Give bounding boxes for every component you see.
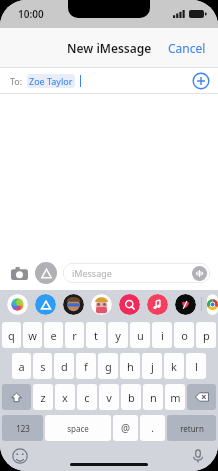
staticText: @: [121, 421, 130, 435]
staticText: c: [84, 390, 90, 405]
button[interactable]: f: [76, 353, 96, 379]
button[interactable]: App Store: [35, 262, 57, 284]
staticText: To:: [10, 75, 23, 87]
button[interactable]: iMessage: [63, 263, 210, 283]
staticText: Cancel: [168, 40, 206, 56]
button[interactable]: App: [63, 294, 84, 315]
button[interactable]: 123: [2, 415, 43, 441]
button[interactable]: To:: [0, 68, 218, 94]
button[interactable]: y: [108, 322, 128, 348]
staticText: .: [151, 421, 154, 435]
staticText: m: [170, 390, 181, 405]
button[interactable]: h: [120, 353, 140, 379]
button[interactable]: w: [23, 322, 42, 348]
button[interactable]: .: [140, 415, 165, 441]
button[interactable]: Audio message: [192, 266, 207, 281]
button[interactable]: Cancel: [156, 32, 218, 64]
button[interactable]: Backspace: [187, 384, 216, 410]
staticText: v: [106, 390, 112, 405]
button[interactable]: z: [33, 384, 53, 410]
staticText: 123: [16, 423, 30, 434]
staticText: o: [181, 328, 188, 343]
button[interactable]: j: [142, 353, 162, 379]
button[interactable]: i: [152, 322, 172, 348]
staticText: x: [62, 390, 68, 405]
button[interactable]: b: [121, 384, 141, 410]
staticText: p: [203, 328, 210, 343]
button[interactable]: q: [2, 322, 21, 348]
button[interactable]: return: [167, 415, 216, 441]
button[interactable]: k: [164, 353, 184, 379]
button[interactable]: n: [143, 384, 163, 410]
button[interactable]: p: [196, 322, 216, 348]
staticText: k: [171, 359, 177, 374]
button[interactable]: o: [174, 322, 194, 348]
staticText: j: [151, 359, 154, 374]
staticText: d: [61, 359, 68, 374]
button[interactable]: a: [12, 353, 31, 379]
button[interactable]: g: [98, 353, 118, 379]
button[interactable]: App: [207, 294, 218, 315]
button[interactable]: l: [186, 353, 206, 379]
button[interactable]: App: [91, 294, 112, 315]
button[interactable]: App: [7, 294, 28, 315]
staticText: w: [28, 328, 37, 343]
button[interactable]: Emoji: [12, 448, 28, 464]
button[interactable]: t: [86, 322, 106, 348]
button[interactable]: Dictation: [190, 448, 206, 464]
staticText: u: [137, 328, 144, 343]
button[interactable]: x: [55, 384, 75, 410]
button[interactable]: e: [44, 322, 63, 348]
staticText: b: [128, 390, 135, 405]
staticText: return: [180, 423, 204, 434]
staticText: i: [161, 328, 164, 343]
button[interactable]: s: [33, 353, 52, 379]
staticText: New iMessage: [67, 40, 152, 56]
button[interactable]: App: [175, 294, 196, 315]
staticText: t: [94, 328, 98, 343]
button[interactable]: Add contact: [192, 72, 210, 90]
staticText: s: [40, 359, 46, 374]
button[interactable]: Camera: [8, 262, 30, 284]
staticText: Zoe Taylor: [29, 75, 73, 87]
button[interactable]: m: [165, 384, 185, 410]
staticText: a: [18, 359, 25, 374]
button[interactable]: v: [99, 384, 119, 410]
button[interactable]: c: [77, 384, 97, 410]
staticText: l: [195, 359, 198, 374]
button[interactable]: App: [119, 294, 140, 315]
button[interactable]: @: [113, 415, 138, 441]
button[interactable]: App: [147, 294, 168, 315]
staticText: iMessage: [72, 267, 112, 279]
staticText: g: [105, 359, 112, 374]
button[interactable]: d: [54, 353, 74, 379]
staticText: n: [150, 390, 157, 405]
staticText: z: [40, 390, 46, 405]
button[interactable]: Shift: [2, 384, 31, 410]
staticText: r: [72, 328, 77, 343]
staticText: 10:00: [18, 7, 44, 21]
staticText: h: [127, 359, 134, 374]
staticText: f: [84, 359, 88, 374]
staticText: space: [67, 423, 89, 434]
button[interactable]: App: [35, 294, 56, 315]
button[interactable]: space: [45, 415, 111, 441]
staticText: e: [50, 328, 57, 343]
staticText: q: [8, 328, 15, 343]
button[interactable]: u: [130, 322, 150, 348]
button[interactable]: r: [65, 322, 84, 348]
staticText: y: [115, 328, 121, 343]
